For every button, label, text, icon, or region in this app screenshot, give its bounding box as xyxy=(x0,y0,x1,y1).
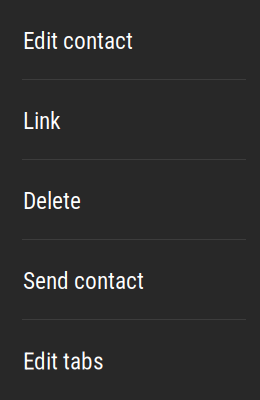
button[interactable]: Edit contact xyxy=(0,0,260,80)
button[interactable]: Link xyxy=(0,80,260,160)
button[interactable]: Edit tabs xyxy=(0,320,260,400)
staticText: Edit tabs xyxy=(23,348,104,375)
staticText: Link xyxy=(23,107,61,135)
staticText: Send contact xyxy=(23,267,144,295)
staticText: Edit contact xyxy=(23,27,133,55)
button[interactable]: Send contact xyxy=(0,240,260,320)
button[interactable]: Delete xyxy=(0,160,260,240)
staticText: Delete xyxy=(23,187,81,215)
